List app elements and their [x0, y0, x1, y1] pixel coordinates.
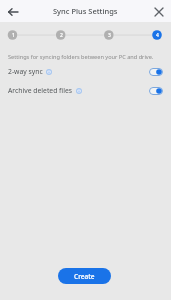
button[interactable]: 2-way sync — [0, 64, 171, 79]
button[interactable]: Step 4 — [152, 30, 162, 40]
button[interactable]: Archive deleted files — [0, 83, 171, 98]
staticText: Settings for syncing folders between you… — [8, 53, 165, 61]
staticText: Create — [74, 272, 95, 281]
button[interactable]: Close — [149, 2, 168, 21]
staticText: 1 — [12, 32, 15, 39]
staticText: 4 — [156, 32, 159, 39]
staticText: Sync Plus Settings — [53, 6, 118, 16]
staticText: Archive deleted files — [8, 86, 73, 95]
staticText: 2-way sync — [8, 67, 43, 76]
button[interactable]: Step 3 — [104, 30, 114, 40]
button[interactable]: Back — [3, 2, 22, 21]
staticText: 3 — [108, 32, 111, 39]
button[interactable]: Step 2 — [56, 30, 66, 40]
button[interactable]: Step 1 — [8, 30, 18, 40]
staticText: 2 — [60, 32, 63, 39]
button[interactable]: Create — [58, 268, 111, 284]
